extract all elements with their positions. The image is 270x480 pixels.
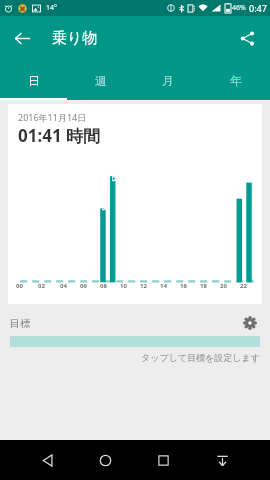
staticText: 0:47 — [249, 2, 267, 14]
staticText: 25 — [249, 180, 257, 187]
staticText: 16 — [180, 282, 187, 290]
staticText: 日 — [28, 73, 40, 88]
staticText: 週 — [95, 73, 107, 88]
staticText: 20 — [220, 282, 227, 290]
button[interactable]: Back — [18, 440, 76, 480]
staticText: 00 — [16, 282, 23, 290]
button[interactable]: Back — [6, 22, 38, 54]
button[interactable]: Hide navigation bar — [193, 440, 252, 480]
button[interactable]: Share — [232, 23, 262, 53]
staticText: 年 — [230, 73, 242, 88]
button[interactable]: 年 — [202, 60, 270, 100]
button[interactable]: Settings — [240, 313, 260, 333]
staticText: 04 — [60, 282, 67, 290]
staticText: 22 — [240, 282, 247, 290]
staticText: タップして目標を設定します — [10, 352, 260, 363]
staticText: 46% — [232, 3, 246, 13]
staticText: 33 — [109, 174, 117, 181]
staticText: 12 — [140, 282, 147, 290]
staticText: 06 — [80, 282, 87, 290]
button[interactable]: Recent apps — [134, 440, 193, 480]
staticText: 23 — [99, 203, 107, 210]
staticText: 10 — [120, 282, 127, 290]
button[interactable]: 2016年11月14日 — [8, 104, 262, 304]
staticText: 乗り物 — [52, 29, 98, 48]
staticText: 14° — [46, 3, 58, 13]
staticText: 18 — [200, 282, 207, 290]
button[interactable]: 日 — [0, 60, 67, 100]
staticText: 01:41 時間 — [18, 124, 101, 147]
button[interactable]: 月 — [134, 60, 202, 100]
staticText: 08 — [100, 282, 107, 290]
button[interactable]: 週 — [67, 60, 134, 100]
staticText: 28 — [239, 194, 247, 201]
staticText: 目標 — [10, 317, 30, 330]
staticText: 月 — [162, 73, 174, 88]
staticText: 2016年11月14日 — [18, 111, 87, 123]
staticText: 14 — [160, 282, 167, 290]
button[interactable]: Home — [76, 440, 134, 480]
staticText: 02 — [38, 282, 45, 290]
